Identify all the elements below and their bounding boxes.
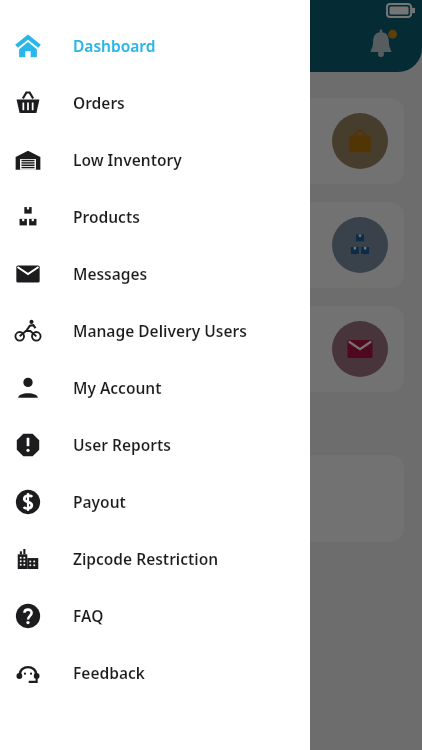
staticText: Manage Delivery Users <box>73 320 247 341</box>
button[interactable] <box>18 306 404 392</box>
button[interactable] <box>18 202 404 288</box>
staticText: My Account <box>73 377 162 398</box>
button[interactable]: Dashboard <box>0 17 310 74</box>
button[interactable]: Orders <box>0 74 310 131</box>
button[interactable]: Zipcode Restriction <box>0 530 310 587</box>
button[interactable]: Manage Delivery Users <box>0 302 310 359</box>
button[interactable] <box>18 455 404 542</box>
button[interactable]: FAQ <box>0 587 310 644</box>
button[interactable] <box>18 98 404 184</box>
staticText: FAQ <box>73 605 104 626</box>
button[interactable]: Notifications <box>364 28 398 62</box>
staticText: Zipcode Restriction <box>73 548 219 569</box>
button[interactable]: User Reports <box>0 416 310 473</box>
staticText: Products <box>73 206 140 227</box>
staticText: User Reports <box>73 434 172 455</box>
staticText: Dashboard <box>73 35 156 56</box>
staticText: Payout <box>73 491 126 512</box>
button[interactable]: Products <box>0 188 310 245</box>
button[interactable]: Payout <box>0 473 310 530</box>
staticText: Low Inventory <box>73 149 182 170</box>
button[interactable]: Low Inventory <box>0 131 310 188</box>
button[interactable]: My Account <box>0 359 310 416</box>
staticText: Feedback <box>73 662 145 683</box>
button[interactable]: Messages <box>0 245 310 302</box>
button[interactable]: Feedback <box>0 644 310 701</box>
staticText: Messages <box>73 263 148 284</box>
staticText: Orders <box>73 92 125 113</box>
